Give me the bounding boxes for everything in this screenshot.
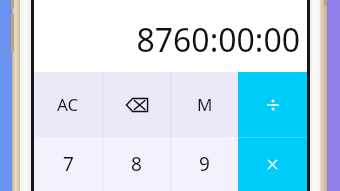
other: Divide xyxy=(266,98,280,112)
staticText: 8760:00:00 xyxy=(136,18,300,62)
button[interactable]: 9 xyxy=(171,137,238,191)
button[interactable]: Multiply xyxy=(238,137,307,191)
button[interactable]: 8 xyxy=(103,137,170,191)
button[interactable]: Divide xyxy=(238,72,307,137)
staticText: 8 xyxy=(131,151,142,177)
button[interactable]: AC xyxy=(34,72,102,137)
staticText: M xyxy=(197,93,213,116)
button[interactable]: Backspace xyxy=(103,72,170,137)
staticText: 9 xyxy=(199,151,210,177)
button[interactable]: 7 xyxy=(34,137,102,191)
staticText: AC xyxy=(57,93,79,116)
button[interactable]: M xyxy=(171,72,238,137)
staticText: 7 xyxy=(63,151,74,177)
other: Multiply xyxy=(267,159,278,170)
other: Backspace xyxy=(126,98,148,112)
